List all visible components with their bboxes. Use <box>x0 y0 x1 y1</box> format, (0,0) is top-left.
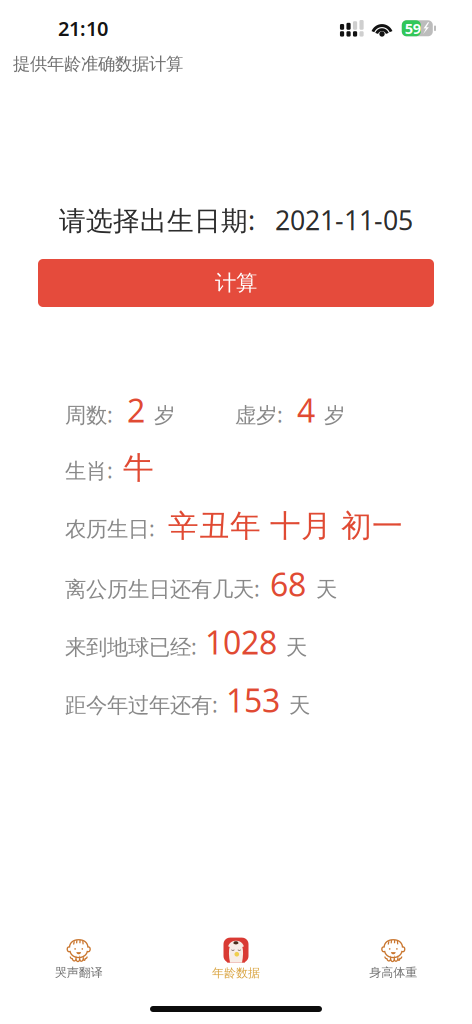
staticText: 提供年龄准确数据计算 <box>13 53 183 75</box>
staticText: 岁 <box>324 402 345 428</box>
staticText: 岁 <box>154 402 175 428</box>
staticText: 距今年过年还有: <box>65 690 218 719</box>
staticText: 请选择出生日期: <box>59 202 255 238</box>
staticText: 59 <box>405 18 421 38</box>
button[interactable]: 哭声翻译 <box>0 929 157 989</box>
staticText: 天 <box>286 634 307 660</box>
staticText: 68 <box>270 563 306 605</box>
staticText: 辛丑年 十月 初一 <box>168 507 403 545</box>
staticText: 天 <box>289 692 310 718</box>
staticText: 离公历生日还有几天: <box>65 574 260 603</box>
staticText: 虚岁: <box>235 400 283 429</box>
staticText: 牛 <box>123 449 154 487</box>
button[interactable]: 计算 <box>38 259 434 307</box>
button[interactable]: 身高体重 <box>315 929 472 989</box>
staticText: 哭声翻译 <box>55 965 103 980</box>
staticText: 年龄数据 <box>212 966 260 980</box>
staticText: 来到地球已经: <box>65 632 197 661</box>
staticText: 计算 <box>215 270 257 296</box>
staticText: 农历生日: <box>65 514 155 542</box>
button[interactable]: 年龄数据 <box>157 929 315 989</box>
staticText: 周数: <box>65 400 113 429</box>
staticText: 天 <box>316 576 337 602</box>
staticText: 身高体重 <box>369 965 417 980</box>
staticText: 153 <box>226 679 280 721</box>
staticText: 生肖: <box>65 456 113 484</box>
staticText: 1028 <box>205 621 277 663</box>
staticText: 2 <box>127 389 145 431</box>
staticText: 2021-11-05 <box>275 202 413 238</box>
staticText: 4 <box>297 389 315 431</box>
staticText: 21:10 <box>58 15 108 42</box>
button[interactable]: 请选择出生日期: <box>59 206 413 234</box>
